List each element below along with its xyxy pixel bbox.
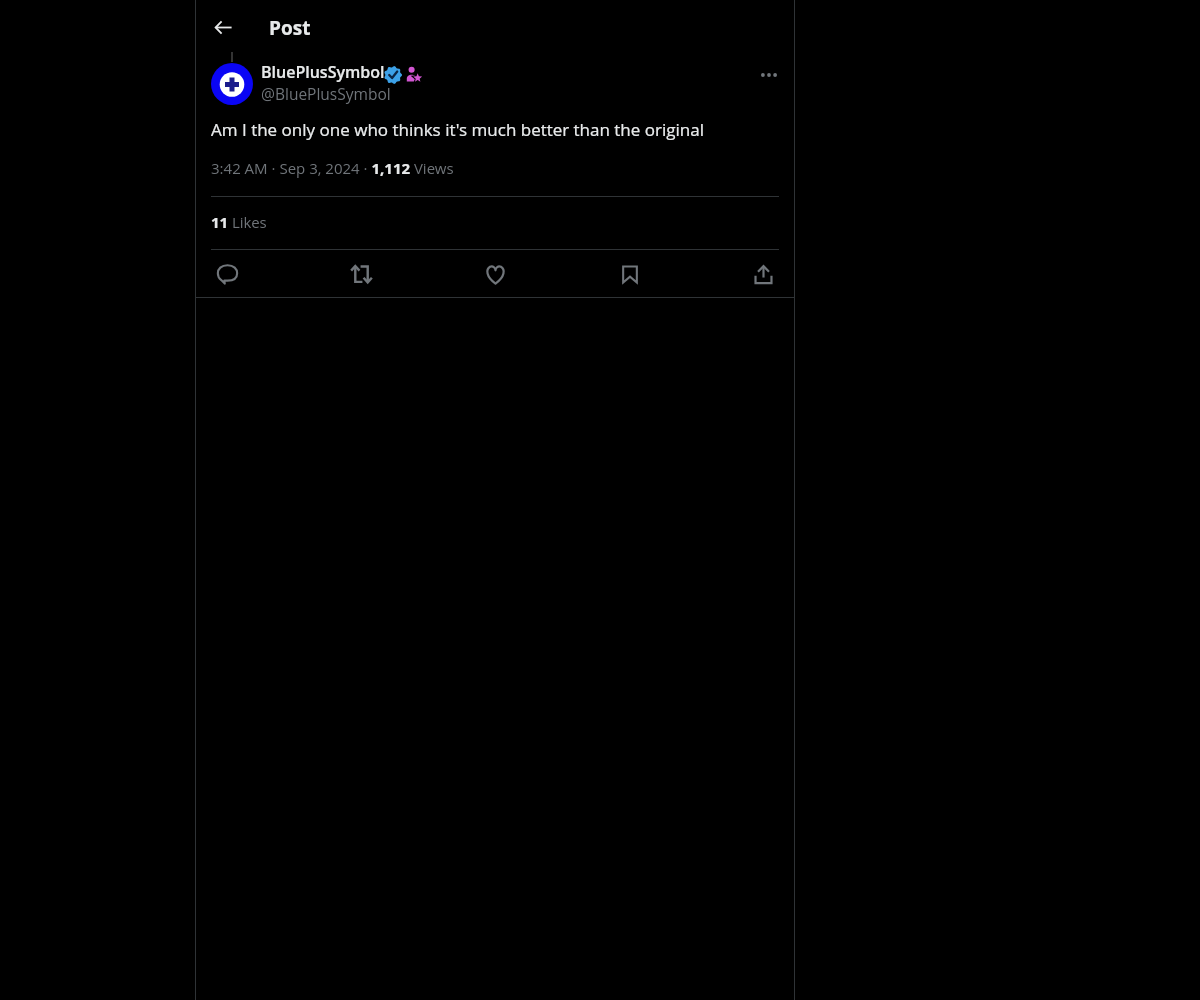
staticText: @BluePlusSymbol (261, 83, 391, 104)
staticText: 11 Likes (211, 212, 267, 232)
staticText: Post (269, 15, 311, 41)
button[interactable]: Profile picture (211, 63, 253, 105)
button[interactable]: Like (478, 257, 512, 291)
button[interactable]: More options (753, 59, 785, 91)
button[interactable]: Bookmark (613, 257, 647, 291)
staticText: 3:42 AM · Sep 3, 2024 · 1,112 Views (211, 158, 454, 178)
button[interactable]: BluePlusSymbol (261, 61, 749, 104)
button[interactable]: Back (205, 9, 241, 45)
button[interactable]: Share (746, 257, 780, 291)
staticText: Am I the only one who thinks it's much b… (211, 118, 705, 141)
button[interactable]: Reply (210, 257, 244, 291)
button[interactable]: Repost (344, 257, 378, 291)
staticText: BluePlusSymbol (261, 61, 385, 83)
